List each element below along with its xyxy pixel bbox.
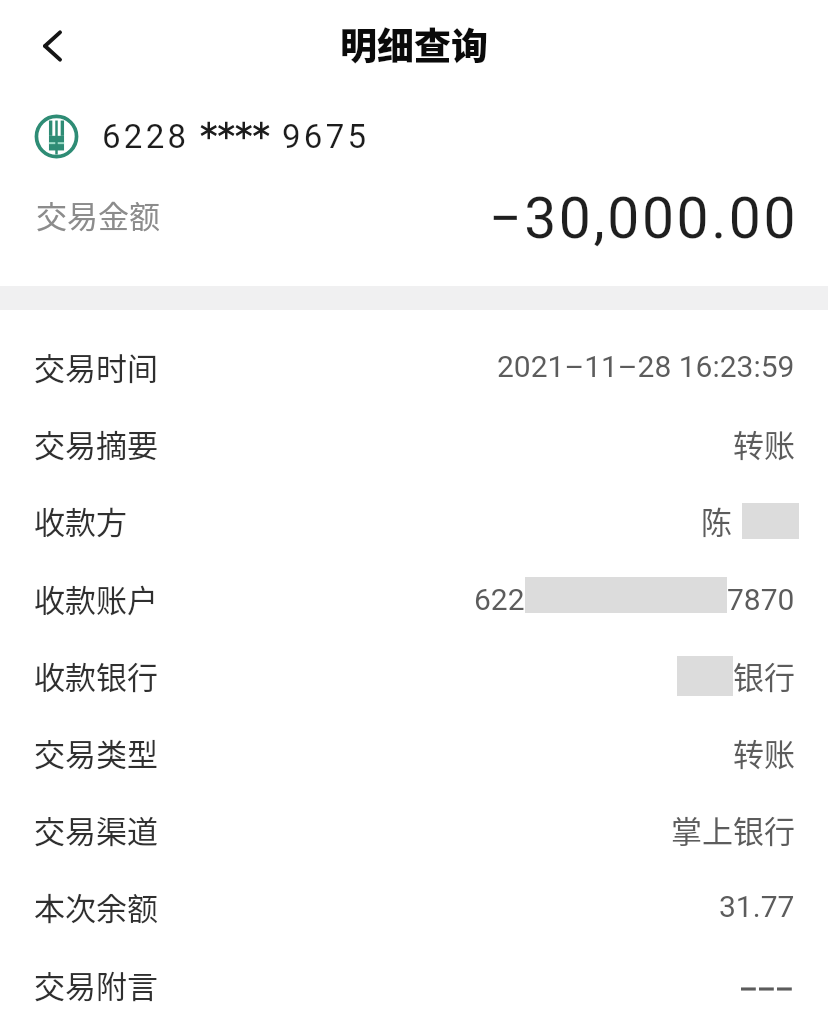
- staticText: 交易渠道: [34, 807, 158, 852]
- staticText: 掌上银行: [671, 807, 795, 852]
- staticText: 收款方: [34, 498, 127, 543]
- staticText: 6228: [102, 117, 190, 156]
- staticText: 9675: [282, 117, 370, 156]
- staticText: 622: [474, 582, 525, 617]
- staticText: 交易类型: [34, 730, 158, 775]
- button[interactable]: Back: [21, 15, 83, 77]
- button[interactable]: 收款方: [0, 482, 828, 559]
- staticText: 转账: [733, 421, 795, 466]
- staticText: 明细查询: [340, 17, 488, 71]
- staticText: 交易附言: [34, 962, 158, 1007]
- staticText: 银行: [733, 653, 795, 698]
- staticText: 31.77: [719, 889, 795, 924]
- staticText: 本次余额: [34, 884, 158, 929]
- staticText: 交易摘要: [34, 421, 158, 466]
- button[interactable]: 交易附言: [0, 946, 828, 1013]
- button[interactable]: 收款银行: [0, 637, 828, 714]
- staticText: 2021–11–28 16:23:59: [497, 349, 795, 384]
- button[interactable]: 交易类型: [0, 714, 828, 791]
- button[interactable]: 收款账户: [0, 560, 828, 637]
- staticText: 收款账户: [34, 576, 158, 621]
- staticText: 交易金额: [36, 192, 160, 237]
- button[interactable]: 交易摘要: [0, 405, 828, 482]
- button[interactable]: 本次余额: [0, 868, 828, 945]
- staticText: 7870: [727, 582, 795, 617]
- staticText: −30,000.00: [489, 185, 799, 247]
- button[interactable]: 交易时间: [0, 328, 828, 405]
- button[interactable]: 交易渠道: [0, 791, 828, 868]
- staticText: 转账: [733, 730, 795, 775]
- button[interactable]: 6228: [0, 100, 828, 172]
- staticText: 陈: [701, 498, 732, 543]
- staticText: 交易时间: [34, 344, 158, 389]
- staticText: 收款银行: [34, 653, 158, 698]
